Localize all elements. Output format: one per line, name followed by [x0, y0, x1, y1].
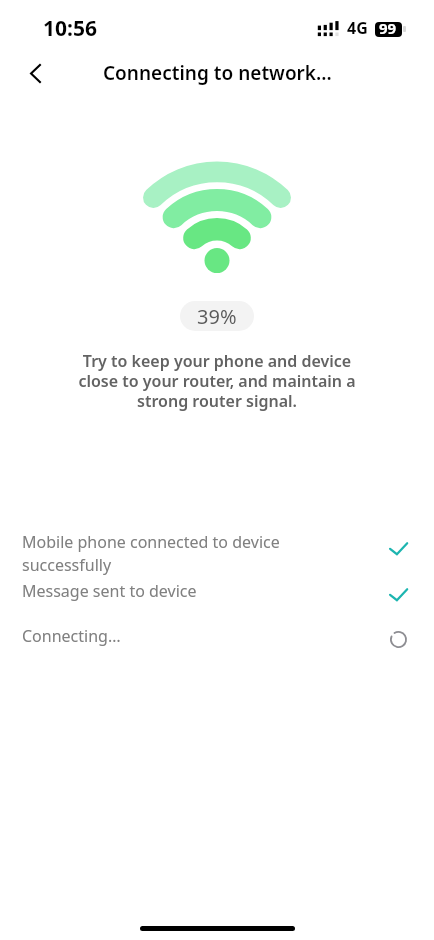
staticText: Message sent to device [22, 580, 197, 602]
staticText: Connecting to network… [103, 60, 332, 86]
button[interactable]: Mobile phone connected to device success… [0, 526, 434, 575]
other: Done [389, 542, 408, 555]
other: Wi-Fi signal [142, 161, 292, 274]
other: Signal strength [316, 19, 340, 37]
staticText: 10:56 [43, 14, 97, 43]
button[interactable]: 39% [180, 301, 254, 331]
staticText: Mobile phone connected to device success… [22, 531, 326, 575]
staticText: 39% [197, 303, 237, 330]
button[interactable]: Message sent to device [0, 575, 434, 611]
button[interactable]: Back [13, 51, 57, 95]
staticText: Connecting… [22, 625, 121, 647]
staticText: Try to keep your phone and device close … [62, 350, 372, 411]
staticText: 99 [379, 18, 397, 38]
other: Battery 99 percent [375, 19, 405, 39]
staticText: 4G [347, 17, 368, 39]
button[interactable]: Connecting… [0, 620, 434, 656]
other: Done [389, 588, 408, 601]
other: In progress [390, 631, 407, 648]
